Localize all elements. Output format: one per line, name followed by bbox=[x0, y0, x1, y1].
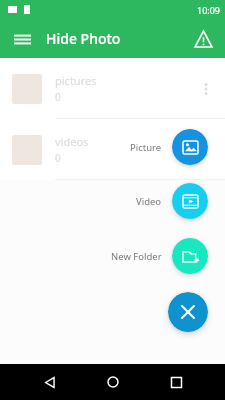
button[interactable]: Home bbox=[98, 367, 128, 397]
staticText: 0 bbox=[55, 151, 61, 165]
staticText: Picture bbox=[130, 141, 162, 154]
staticText: New Folder bbox=[111, 250, 162, 263]
staticText: pictures bbox=[55, 73, 97, 88]
staticText: 0 bbox=[55, 90, 61, 104]
staticText: Video bbox=[136, 195, 162, 208]
staticText: 10:09 bbox=[197, 4, 221, 16]
button[interactable] bbox=[172, 183, 208, 219]
button[interactable]: More options bbox=[193, 137, 219, 163]
button[interactable]: Back bbox=[34, 367, 64, 397]
button[interactable] bbox=[172, 238, 208, 274]
staticText: videos bbox=[55, 134, 89, 149]
staticText: Hide Photo bbox=[46, 29, 121, 48]
button[interactable]: Recents bbox=[161, 367, 191, 397]
button[interactable]: Close menu bbox=[168, 292, 208, 332]
button[interactable]: Menu bbox=[8, 25, 36, 53]
button[interactable]: Warning bbox=[189, 25, 217, 53]
button[interactable]: More options bbox=[193, 76, 219, 102]
button[interactable]: videos bbox=[0, 119, 225, 180]
button[interactable] bbox=[172, 129, 208, 165]
button[interactable]: pictures bbox=[0, 58, 225, 119]
